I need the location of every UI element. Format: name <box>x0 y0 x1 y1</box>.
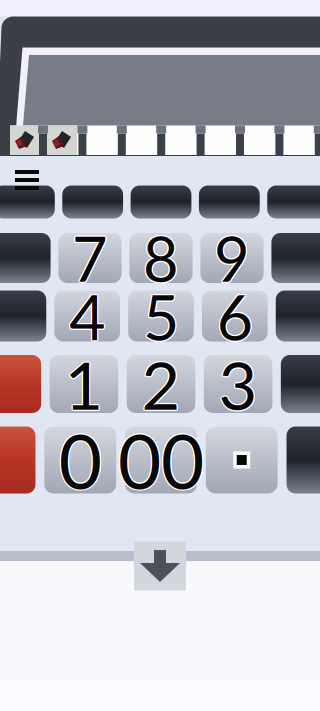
staticText: 3 <box>219 344 258 424</box>
staticText: 1 <box>65 345 104 425</box>
button[interactable]: Clear <box>0 355 41 413</box>
staticText: 2 <box>142 343 181 423</box>
button[interactable]: Decimal point <box>206 426 278 493</box>
staticText: 1 <box>63 345 102 425</box>
staticText: 4 <box>70 277 106 353</box>
staticText: 00 <box>117 415 203 505</box>
staticText: 5 <box>144 278 180 354</box>
staticText: 2 <box>142 345 181 425</box>
staticText: 2 <box>141 345 180 425</box>
staticText: 9 <box>215 221 251 295</box>
staticText: 7 <box>72 220 108 294</box>
staticText: 4 <box>68 277 104 353</box>
staticText: 3 <box>217 344 256 424</box>
staticText: 0 <box>60 415 103 505</box>
staticText: 9 <box>215 222 251 296</box>
staticText: 7 <box>71 221 107 295</box>
button[interactable]: Function key <box>281 355 320 413</box>
staticText: 8 <box>142 221 178 295</box>
button[interactable]: Function key <box>0 233 51 283</box>
staticText: 0 <box>60 416 103 506</box>
staticText: 6 <box>216 279 252 354</box>
staticText: 7 <box>71 222 107 296</box>
staticText: 5 <box>143 277 179 352</box>
staticText: 5 <box>143 278 179 354</box>
button[interactable]: Clear <box>0 426 35 493</box>
staticText: 00 <box>118 414 204 504</box>
staticText: 4 <box>70 278 106 354</box>
button[interactable]: 0 <box>44 426 116 493</box>
staticText: 4 <box>69 277 105 352</box>
staticText: 3 <box>218 343 257 423</box>
staticText: 4 <box>69 278 105 354</box>
button[interactable]: Scroll down <box>134 541 186 590</box>
staticText: 4 <box>68 279 104 354</box>
staticText: 00 <box>119 415 205 505</box>
staticText: 8 <box>144 221 180 295</box>
staticText: 00 <box>117 416 203 506</box>
staticText: 9 <box>214 221 250 295</box>
staticText: 8 <box>143 222 179 296</box>
button[interactable]: 00 <box>125 426 197 493</box>
staticText: 3 <box>219 345 258 425</box>
button[interactable]: Function key <box>199 185 260 218</box>
button[interactable]: Function key <box>276 290 320 341</box>
staticText: 4 <box>70 279 106 354</box>
staticText: 4 <box>69 280 105 355</box>
button[interactable]: 8 <box>129 233 193 283</box>
button[interactable]: 1 <box>50 355 118 413</box>
button[interactable]: Function key <box>271 233 320 283</box>
staticText: 1 <box>65 343 104 423</box>
staticText: 3 <box>219 345 258 425</box>
staticText: 3 <box>220 344 259 424</box>
staticText: 00 <box>118 415 204 505</box>
staticText: 5 <box>142 277 178 353</box>
staticText: 6 <box>218 279 254 354</box>
staticText: 2 <box>141 345 180 425</box>
staticText: 2 <box>140 344 179 424</box>
staticText: 2 <box>141 344 180 424</box>
staticText: 9 <box>214 222 250 296</box>
staticText: 7 <box>73 220 109 294</box>
staticText: 1 <box>63 344 102 424</box>
staticText: 2 <box>141 343 180 423</box>
staticText: 8 <box>142 222 178 296</box>
button[interactable]: 6 <box>202 290 268 341</box>
staticText: 00 <box>119 414 205 504</box>
staticText: 1 <box>63 343 102 423</box>
button[interactable]: 3 <box>204 355 272 413</box>
staticText: 9 <box>213 220 249 294</box>
button[interactable]: 7 <box>58 233 122 283</box>
button[interactable]: Function key <box>62 185 123 218</box>
staticText: 6 <box>217 277 253 352</box>
staticText: 6 <box>218 278 254 354</box>
staticText: 8 <box>144 222 180 296</box>
staticText: 7 <box>72 222 108 296</box>
staticText: 00 <box>117 414 203 504</box>
staticText: 0 <box>60 414 103 504</box>
staticText: 3 <box>218 345 257 425</box>
staticText: 6 <box>218 277 254 353</box>
button[interactable]: Function key <box>131 185 191 218</box>
button[interactable]: 2 <box>127 355 195 413</box>
staticText: 5 <box>144 277 180 353</box>
staticText: 3 <box>219 343 258 423</box>
staticText: 4 <box>68 278 104 354</box>
button[interactable]: Function key <box>267 185 320 218</box>
staticText: 5 <box>142 279 178 354</box>
staticText: 8 <box>143 221 179 295</box>
button[interactable]: 9 <box>200 233 264 283</box>
staticText: 1 <box>64 343 103 423</box>
button[interactable]: 5 <box>128 290 194 341</box>
staticText: 5 <box>143 280 179 355</box>
staticText: 8 <box>142 220 178 294</box>
staticText: 0 <box>59 414 102 504</box>
button[interactable]: Function key <box>0 290 46 341</box>
staticText: 9 <box>213 221 249 295</box>
staticText: 2 <box>143 344 182 424</box>
button[interactable]: 4 <box>54 290 120 341</box>
button[interactable]: Function key <box>0 185 55 218</box>
button[interactable]: Function key <box>286 426 320 493</box>
staticText: 5 <box>142 278 178 354</box>
staticText: 0 <box>58 416 101 506</box>
